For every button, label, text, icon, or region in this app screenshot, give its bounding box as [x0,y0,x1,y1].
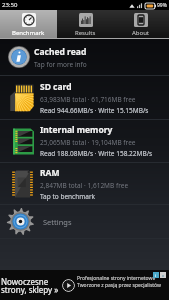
staticText: Nowoczesne strony, sklepy » [1,276,59,295]
staticText: 63,983MB total · 61,716MB free [40,95,136,104]
button[interactable]: Results [57,10,113,38]
staticText: Tap to benchmark [40,192,96,201]
button[interactable]: Cached read [0,39,169,75]
staticText: Cached read [34,46,87,58]
staticText: RAM [40,167,60,179]
button[interactable]: Nowoczesne strony, sklepy » [0,270,169,300]
staticText: Results [75,29,96,37]
staticText: 23:50 [2,1,18,9]
other: Play ad [62,279,75,292]
staticText: Profesjonalne strony internetowe [77,275,156,282]
staticText: Settings [43,217,72,227]
staticText: Internal memory [40,124,113,136]
staticText: 2,847MB total · 1,612MB free [40,181,129,190]
staticText: 25,065MB total · 19,104MB free [40,138,136,147]
staticText: SD card [40,81,72,93]
button[interactable]: About [113,10,169,38]
staticText: x [162,273,165,278]
staticText: Tworzone z pasją przez specjalistów [77,282,161,289]
staticText: Read 944.66MB/s · Write 15.15MB/s [40,106,149,115]
staticText: 99% [157,2,167,9]
button[interactable]: Settings [0,205,169,238]
button[interactable]: Benchmark [0,10,57,38]
button[interactable]: RAM [0,163,169,204]
staticText: Read 188.08MB/s · Write 158.22MB/s [40,149,153,158]
staticText: i [155,273,157,278]
staticText: Benchmark [12,29,45,37]
button[interactable]: Internal memory [0,120,169,162]
staticText: About [132,29,150,37]
staticText: Tap for more info [34,60,87,69]
button[interactable]: SD card [0,76,169,119]
